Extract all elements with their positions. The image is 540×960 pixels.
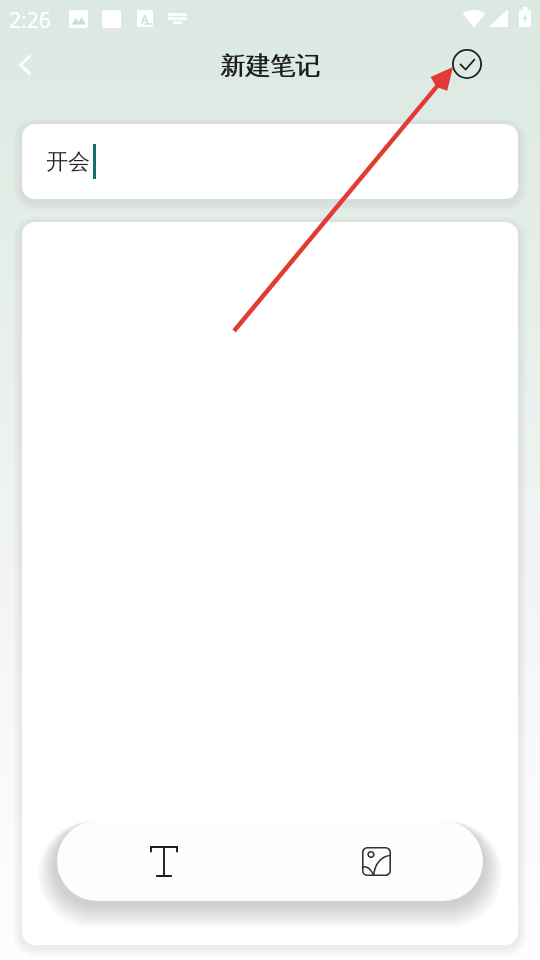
button[interactable]: Save note bbox=[447, 44, 487, 84]
button[interactable]: Text format bbox=[57, 821, 270, 901]
staticText: 2:26 bbox=[9, 6, 51, 35]
button[interactable]: Back bbox=[3, 43, 47, 87]
staticText: A bbox=[141, 11, 149, 27]
button[interactable]: 开会 bbox=[22, 124, 518, 199]
staticText: 新建笔记 bbox=[221, 50, 321, 81]
staticText: 新建笔记 bbox=[220, 50, 320, 81]
staticText: 开会 bbox=[46, 148, 90, 176]
button[interactable]: Insert image bbox=[270, 821, 483, 901]
